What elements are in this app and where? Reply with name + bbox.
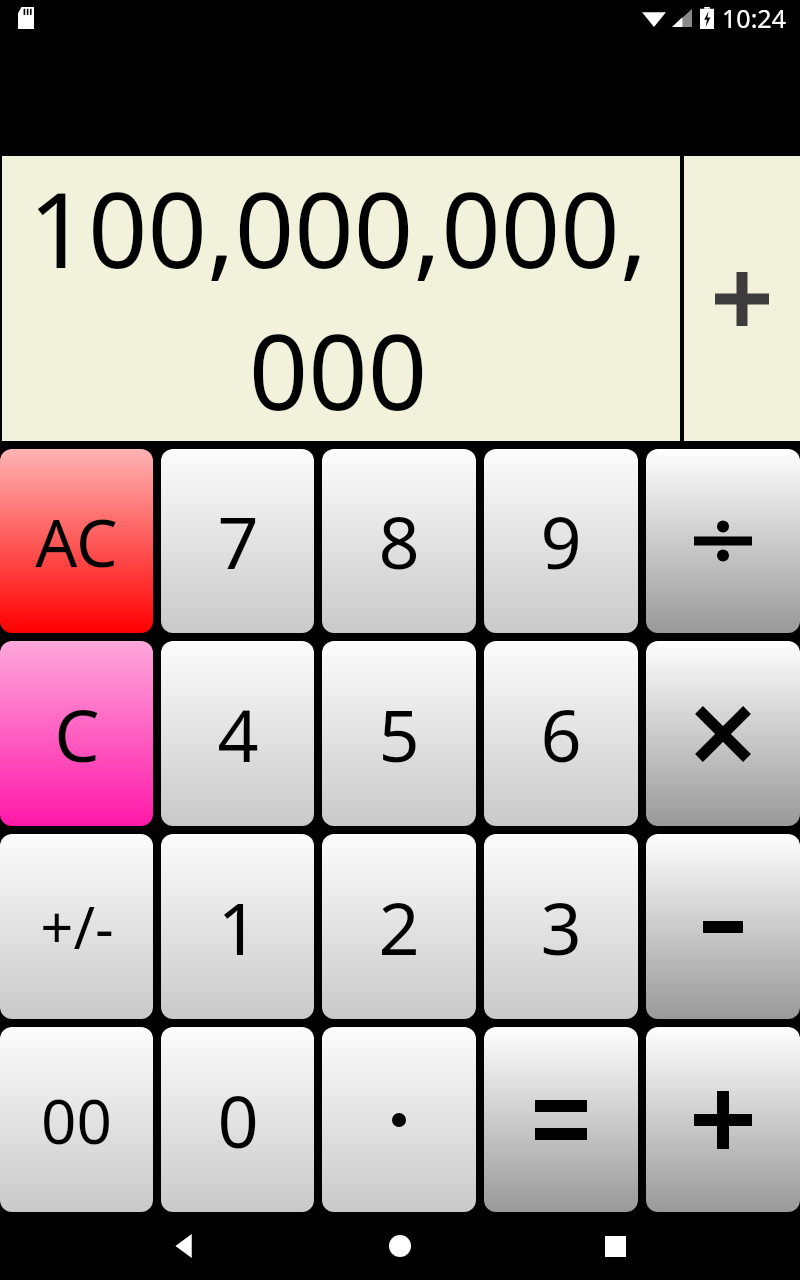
button[interactable]: 0 <box>161 1027 314 1212</box>
staticText: 7 <box>217 492 259 590</box>
button[interactable]: Home <box>370 1216 430 1276</box>
button[interactable] <box>322 1027 476 1212</box>
button[interactable] <box>646 449 800 633</box>
staticText: 3 <box>540 878 582 976</box>
staticText: +/- <box>40 887 114 966</box>
button[interactable]: C <box>0 641 153 826</box>
staticText: AC <box>35 496 118 586</box>
button[interactable]: 6 <box>484 641 638 826</box>
staticText: 10:24 <box>722 1 786 35</box>
button[interactable]: 8 <box>322 449 476 633</box>
staticText: 5 <box>378 685 420 783</box>
button[interactable] <box>646 641 800 826</box>
staticText: 6 <box>540 685 582 783</box>
button[interactable] <box>484 1027 638 1212</box>
button[interactable] <box>646 1027 800 1212</box>
staticText: 0 <box>217 1071 259 1169</box>
button[interactable]: +/- <box>0 834 153 1019</box>
button[interactable]: 3 <box>484 834 638 1019</box>
button[interactable]: AC <box>0 449 153 633</box>
staticText: 100,000,000,000 <box>2 157 674 441</box>
button[interactable]: Back <box>155 1216 215 1276</box>
staticText: 8 <box>378 492 420 590</box>
staticText: 1 <box>217 878 259 976</box>
button[interactable]: 2 <box>322 834 476 1019</box>
button[interactable]: 5 <box>322 641 476 826</box>
button[interactable]: 4 <box>161 641 314 826</box>
button[interactable]: Recent apps <box>585 1216 645 1276</box>
button[interactable] <box>646 834 800 1019</box>
staticText: 9 <box>540 492 582 590</box>
staticText: 2 <box>378 878 420 976</box>
staticText: 4 <box>217 685 259 783</box>
button[interactable]: 1 <box>161 834 314 1019</box>
button[interactable]: 7 <box>161 449 314 633</box>
staticText: 00 <box>41 1078 112 1162</box>
button[interactable]: 9 <box>484 449 638 633</box>
button[interactable]: 00 <box>0 1027 153 1212</box>
staticText: C <box>54 685 100 783</box>
